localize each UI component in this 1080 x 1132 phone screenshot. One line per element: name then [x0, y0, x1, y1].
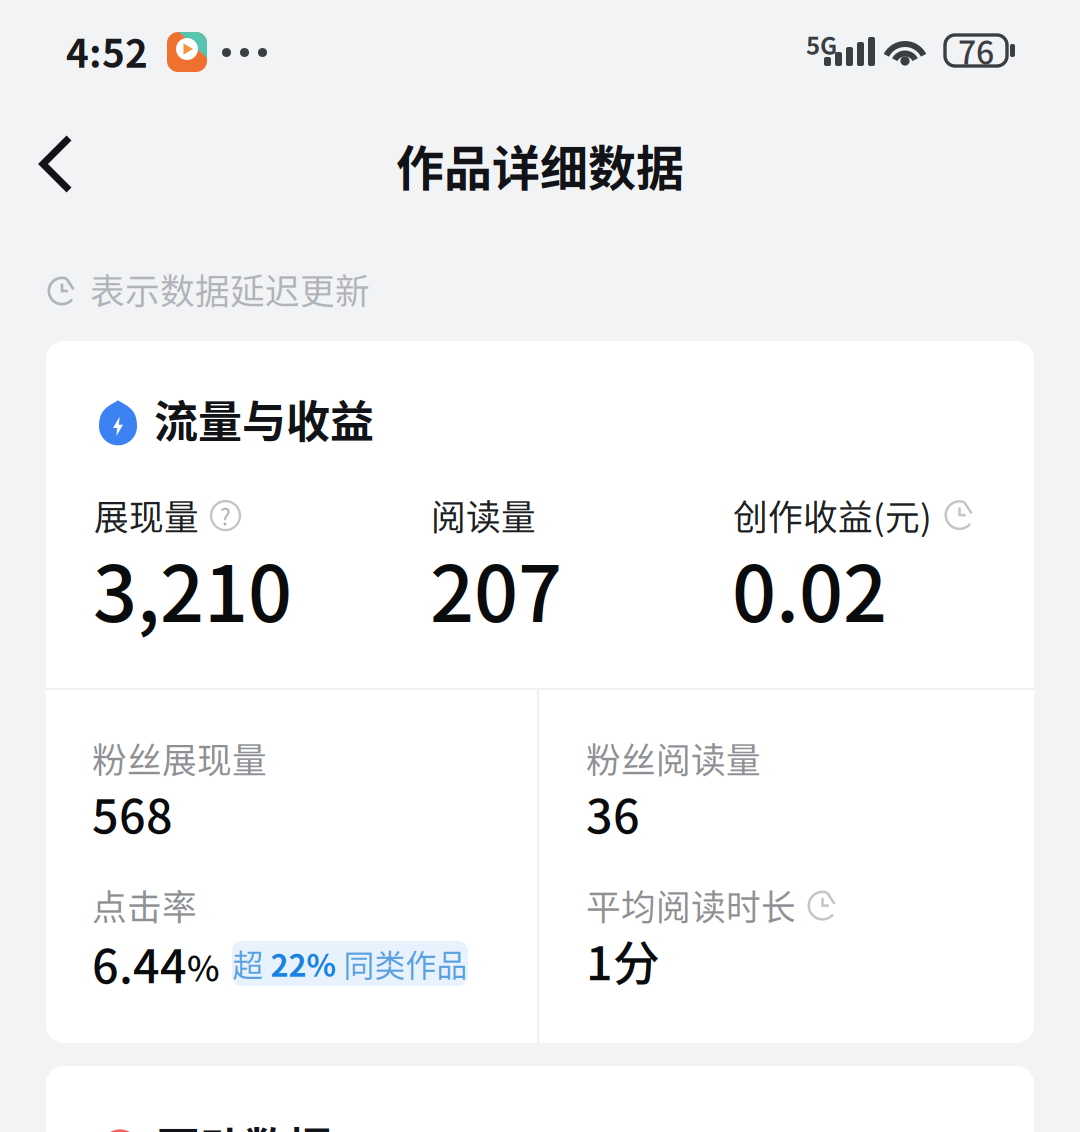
staticText: 表示数据延迟更新	[90, 264, 370, 314]
staticText: 作品详细数据	[396, 130, 684, 199]
staticText: 207	[430, 532, 562, 644]
staticText: 点击率	[92, 880, 197, 930]
staticText: 超	[232, 941, 263, 986]
button[interactable]: Back	[16, 112, 96, 216]
staticText: 4:52	[66, 23, 148, 79]
button[interactable]: 流量与收益	[99, 382, 374, 464]
staticText: 粉丝阅读量	[586, 733, 761, 783]
staticText: 互动数据	[156, 1114, 332, 1132]
button[interactable]: 互动数据	[101, 1109, 332, 1132]
staticText: 平均阅读时长	[586, 880, 796, 930]
staticText: 展现量	[94, 490, 199, 540]
staticText: 创作收益(元)	[733, 490, 932, 540]
staticText: ?	[220, 499, 231, 532]
staticText: 粉丝展现量	[92, 733, 267, 783]
staticText: 流量与收益	[154, 387, 374, 451]
button[interactable]: 关于展现量	[211, 500, 240, 530]
staticText: 76	[958, 27, 994, 74]
staticText: %	[187, 941, 220, 992]
staticText: 1分	[586, 926, 660, 994]
staticText: 22%	[270, 941, 336, 986]
staticText: 568	[92, 779, 173, 847]
staticText: 6.44	[92, 929, 187, 997]
staticText: 阅读量	[431, 490, 536, 540]
staticText: 0.02	[732, 532, 887, 644]
staticText: 3,210	[93, 532, 292, 644]
staticText: 36	[586, 779, 640, 847]
staticText: 5G	[806, 27, 837, 62]
staticText: 同类作品	[343, 941, 467, 986]
